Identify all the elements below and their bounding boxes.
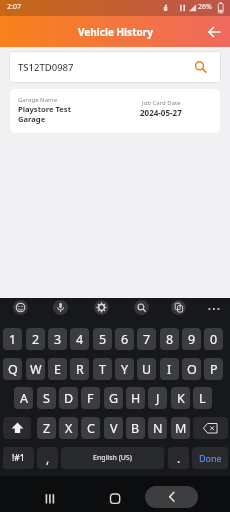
button[interactable]: Garage Name: [10, 89, 220, 133]
button[interactable]: 6: [115, 328, 134, 350]
staticText: H: [131, 390, 141, 407]
staticText: .: [177, 450, 181, 466]
staticText: 4: [76, 331, 84, 348]
staticText: B: [131, 420, 140, 437]
staticText: L: [199, 390, 206, 407]
button[interactable]: F: [81, 387, 100, 409]
staticText: 2:07: [7, 2, 21, 12]
staticText: 0: [210, 331, 218, 348]
button[interactable]: H: [126, 387, 145, 409]
button[interactable]: 9: [182, 328, 201, 350]
staticText: O: [187, 361, 197, 378]
button[interactable]: Done: [192, 447, 228, 469]
button[interactable]: 7: [137, 328, 156, 350]
staticText: K: [177, 390, 185, 407]
button[interactable]: R: [70, 358, 89, 380]
button[interactable]: [206, 300, 222, 316]
button[interactable]: English (US): [61, 447, 164, 469]
staticText: Z: [43, 420, 51, 437]
staticText: E: [54, 361, 61, 378]
button[interactable]: M: [171, 417, 190, 439]
staticText: TS12TD0987: [18, 61, 74, 74]
staticText: P: [210, 361, 218, 378]
staticText: Q: [8, 361, 18, 378]
staticText: T: [99, 361, 106, 378]
staticText: J: [156, 390, 160, 407]
staticText: 3: [54, 331, 62, 348]
button[interactable]: S: [37, 387, 56, 409]
button[interactable]: Z: [37, 417, 56, 439]
button[interactable]: 1: [3, 328, 22, 350]
button[interactable]: [106, 490, 124, 508]
button[interactable]: [3, 417, 31, 439]
button[interactable]: O: [182, 358, 201, 380]
staticText: !#1: [12, 452, 25, 464]
button[interactable]: N: [148, 417, 167, 439]
button[interactable]: 2: [26, 328, 45, 350]
staticText: C: [87, 420, 95, 437]
button[interactable]: 0: [204, 328, 223, 350]
button[interactable]: .: [168, 447, 189, 469]
button[interactable]: [204, 19, 230, 45]
staticText: U: [142, 361, 152, 378]
staticText: 2: [32, 331, 40, 348]
button[interactable]: [40, 490, 58, 508]
button[interactable]: ,: [37, 447, 58, 469]
button[interactable]: [145, 486, 198, 508]
staticText: M: [175, 420, 187, 437]
staticText: G: [109, 390, 119, 407]
staticText: 9: [188, 331, 196, 348]
staticText: 1: [9, 331, 17, 348]
staticText: D: [64, 390, 74, 407]
staticText: Vehicle History: [78, 25, 153, 39]
button[interactable]: 3: [48, 328, 67, 350]
staticText: English (US): [93, 453, 132, 463]
button[interactable]: I: [160, 358, 179, 380]
staticText: N: [153, 420, 163, 437]
button[interactable]: [13, 300, 28, 315]
button[interactable]: Y: [115, 358, 134, 380]
staticText: W: [30, 361, 42, 378]
staticText: X: [65, 420, 73, 437]
button[interactable]: B: [126, 417, 145, 439]
button[interactable]: W: [26, 358, 45, 380]
staticText: 8: [166, 331, 174, 348]
staticText: Job Card Date: [142, 99, 181, 107]
button[interactable]: G: [104, 387, 123, 409]
staticText: Done: [199, 452, 222, 464]
button[interactable]: A: [14, 387, 33, 409]
button[interactable]: [134, 300, 149, 315]
button[interactable]: J: [148, 387, 167, 409]
staticText: 2024-05-27: [140, 107, 182, 118]
staticText: 5: [99, 331, 107, 348]
staticText: I: [167, 361, 172, 378]
button[interactable]: [53, 300, 68, 315]
button[interactable]: [94, 300, 109, 315]
button[interactable]: 8: [160, 328, 179, 350]
staticText: F: [87, 390, 94, 407]
button[interactable]: V: [104, 417, 123, 439]
staticText: Y: [121, 361, 129, 378]
button[interactable]: !#1: [3, 447, 34, 469]
button[interactable]: 4: [70, 328, 89, 350]
staticText: A: [20, 390, 28, 407]
button[interactable]: U: [137, 358, 156, 380]
button[interactable]: TS12TD0987: [9, 51, 221, 83]
button[interactable]: Q: [3, 358, 22, 380]
staticText: Garage: [18, 114, 46, 124]
button[interactable]: X: [59, 417, 78, 439]
button[interactable]: C: [81, 417, 100, 439]
button[interactable]: E: [48, 358, 67, 380]
button[interactable]: K: [171, 387, 190, 409]
button[interactable]: 5: [93, 328, 112, 350]
button[interactable]: [171, 300, 186, 315]
button[interactable]: [193, 417, 228, 439]
staticText: Garage Name: [18, 96, 58, 104]
button[interactable]: T: [93, 358, 112, 380]
button[interactable]: D: [59, 387, 78, 409]
button[interactable]: L: [193, 387, 212, 409]
button[interactable]: P: [204, 358, 223, 380]
staticText: S: [43, 390, 50, 407]
staticText: 26%: [198, 2, 212, 12]
staticText: Playstore Test: [18, 104, 71, 114]
